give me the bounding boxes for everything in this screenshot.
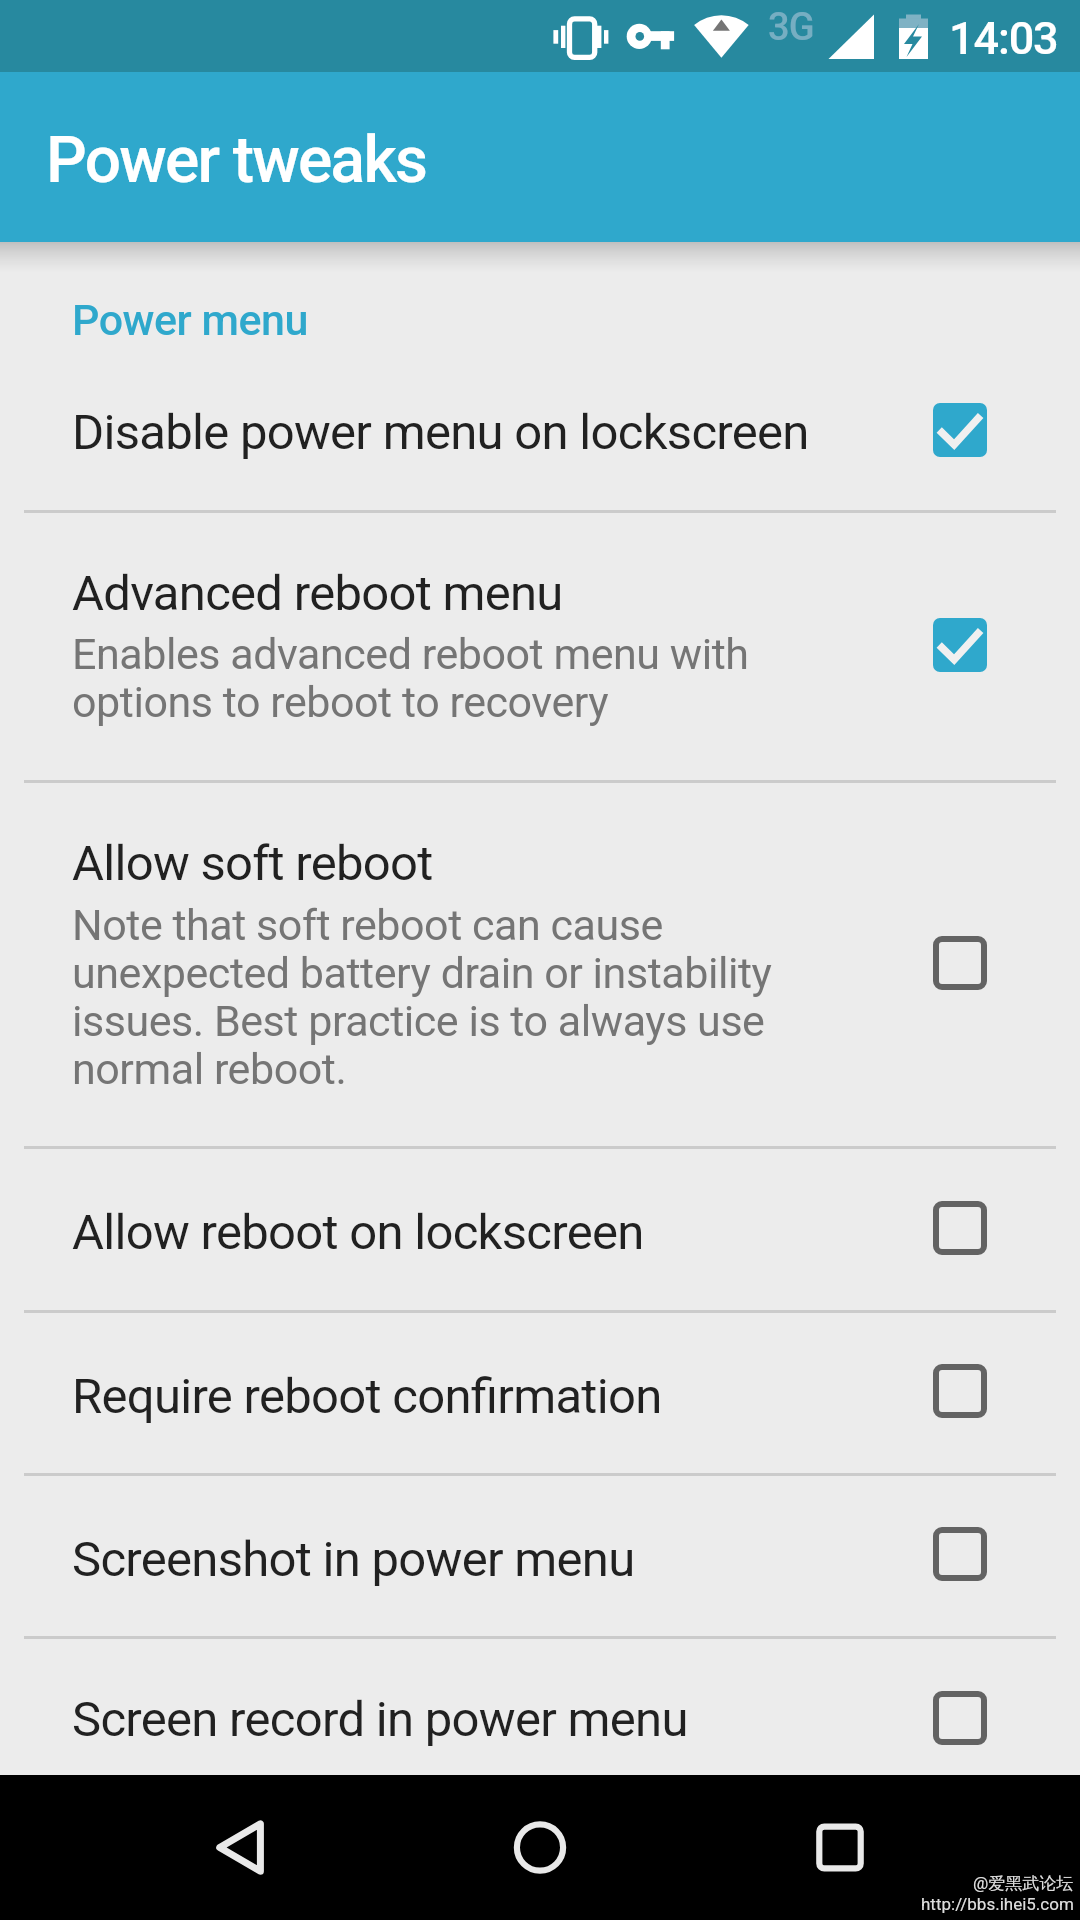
staticText: Power tweaks <box>46 123 427 198</box>
button[interactable]: Advanced reboot menu <box>906 591 1014 699</box>
staticText: Allow reboot on lockscreen <box>72 1204 644 1261</box>
button[interactable]: Screenshot in power menu <box>906 1500 1014 1608</box>
button[interactable]: Screen record in power menu <box>906 1664 1014 1772</box>
staticText: Disable power menu on lockscreen <box>72 404 809 461</box>
staticText: Power menu <box>72 295 309 345</box>
staticText: Advanced reboot menu <box>72 565 563 622</box>
button[interactable]: Require reboot confirmation <box>906 1337 1014 1445</box>
button[interactable]: Allow reboot on lockscreen <box>0 1149 1080 1310</box>
button[interactable]: Require reboot confirmation <box>0 1313 1080 1473</box>
staticText: 14:03 <box>949 12 1058 65</box>
button[interactable]: Disable power menu on lockscreen <box>0 390 1080 510</box>
staticText: http://bbs.ihei5.com <box>921 1894 1074 1914</box>
button[interactable]: Back <box>150 1775 330 1920</box>
button[interactable]: Screenshot in power menu <box>0 1476 1080 1636</box>
button[interactable]: Allow soft reboot <box>0 783 1080 1146</box>
staticText: Enables advanced reboot menu with option… <box>72 629 749 727</box>
button[interactable]: Allow soft reboot <box>906 909 1014 1017</box>
staticText: Note that soft reboot can cause unexpect… <box>72 900 772 1094</box>
staticText: @爱黑武论坛 <box>973 1873 1074 1894</box>
staticText: Require reboot confirmation <box>72 1368 662 1425</box>
staticText: Allow soft reboot <box>72 835 433 892</box>
staticText: 3G <box>768 5 814 50</box>
staticText: Screenshot in power menu <box>72 1531 635 1588</box>
staticText: Screen record in power menu <box>72 1691 688 1748</box>
button[interactable]: Screen record in power menu <box>0 1639 1080 1775</box>
button[interactable]: Advanced reboot menu <box>0 513 1080 780</box>
button[interactable]: Disable power menu on lockscreen <box>906 376 1014 484</box>
button[interactable]: Home <box>450 1775 630 1920</box>
button[interactable]: Recent apps <box>750 1775 930 1920</box>
button[interactable]: Allow reboot on lockscreen <box>906 1174 1014 1282</box>
